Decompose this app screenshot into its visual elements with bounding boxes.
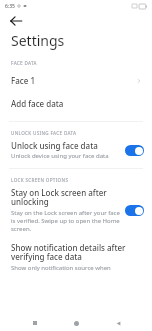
button[interactable]: Stay on Lock screen after unlocking bbox=[0, 186, 152, 234]
button[interactable]: Show notification details after verifyin… bbox=[0, 241, 152, 273]
button[interactable]: Toggle bbox=[125, 145, 144, 156]
staticText: Stay on Lock screen after unlocking bbox=[11, 187, 121, 208]
button[interactable]: Unlock using face data bbox=[0, 139, 152, 161]
staticText: Unlock using face data bbox=[11, 140, 98, 151]
button[interactable]: Home bbox=[69, 316, 83, 330]
staticText: Show notification details after verifyin… bbox=[11, 242, 144, 263]
button[interactable]: Recents bbox=[28, 316, 42, 330]
staticText: Settings bbox=[11, 31, 65, 50]
staticText: LOCK SCREEN OPTIONS bbox=[11, 177, 69, 183]
other: Open bbox=[136, 78, 142, 84]
button[interactable]: Add face data bbox=[0, 92, 152, 115]
staticText: Add face data bbox=[11, 98, 142, 109]
button[interactable]: Face 1 bbox=[0, 69, 152, 92]
button[interactable]: Back bbox=[111, 316, 125, 330]
staticText: UNLOCK USING FACE DATA bbox=[11, 130, 77, 136]
button[interactable]: Back bbox=[8, 13, 24, 29]
staticText: 6:35 bbox=[5, 3, 15, 10]
staticText: Stay on the Lock screen after your face … bbox=[11, 209, 121, 233]
staticText: Show only notification source when bbox=[11, 264, 111, 272]
staticText: Unlock device using your face data bbox=[11, 152, 109, 160]
button[interactable]: Toggle bbox=[125, 205, 144, 216]
staticText: FACE DATA bbox=[11, 60, 37, 66]
staticText: Face 1 bbox=[11, 75, 136, 86]
